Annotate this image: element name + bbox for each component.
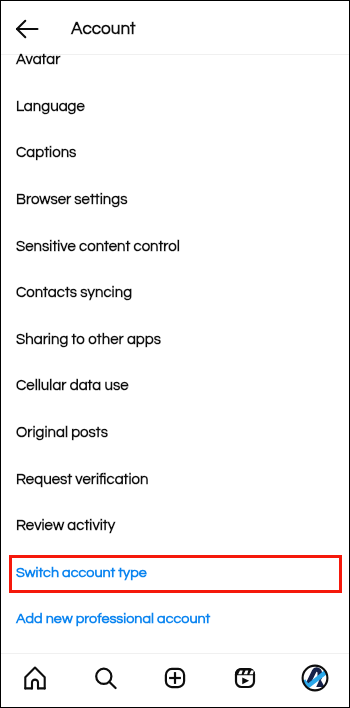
button[interactable]: Create new post [140, 654, 210, 708]
staticText: Account [71, 20, 136, 38]
button[interactable]: Home [0, 654, 70, 708]
button[interactable]: Request verification [0, 456, 350, 503]
button[interactable]: Sensitive content control [0, 223, 350, 270]
button[interactable]: Reels [210, 654, 280, 708]
button[interactable]: Captions [0, 129, 350, 176]
button[interactable]: Avatar [0, 36, 350, 83]
button[interactable]: Browser settings [0, 176, 350, 223]
button[interactable]: Add new professional account [0, 595, 350, 642]
staticText: Contacts syncing [16, 285, 133, 300]
button[interactable]: Cellular data use [0, 362, 350, 409]
staticText: Avatar [16, 52, 61, 67]
staticText: Cellular data use [16, 378, 129, 393]
staticText: Browser settings [16, 192, 128, 207]
staticText: Switch account type [16, 565, 147, 580]
button[interactable]: Profile [280, 654, 350, 708]
staticText: Sensitive content control [16, 239, 180, 254]
button[interactable]: Search [70, 654, 140, 708]
staticText: Request verification [16, 472, 149, 487]
staticText: Original posts [16, 425, 108, 440]
button[interactable]: Original posts [0, 409, 350, 456]
staticText: Language [16, 99, 85, 114]
staticText: Sharing to other apps [16, 332, 161, 347]
staticText: Add new professional account [16, 611, 211, 626]
button[interactable]: Back [16, 18, 38, 40]
button[interactable]: Language [0, 83, 350, 130]
button[interactable]: Sharing to other apps [0, 316, 350, 363]
button[interactable]: Review activity [0, 502, 350, 549]
staticText: Captions [16, 145, 77, 160]
button[interactable]: Switch account type [0, 549, 350, 596]
button[interactable]: Contacts syncing [0, 269, 350, 316]
staticText: Review activity [16, 518, 116, 533]
